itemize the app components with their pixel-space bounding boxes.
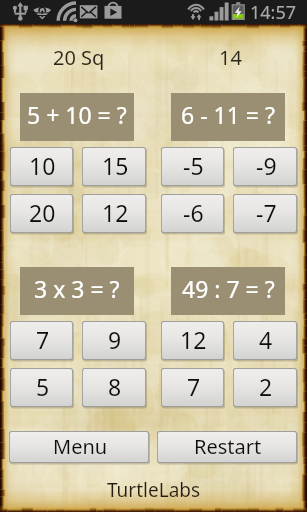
button[interactable]: 6 - 11 = ? — [171, 93, 285, 141]
staticText: 9 — [108, 324, 122, 355]
button[interactable]: 12 — [82, 194, 146, 233]
button[interactable]: 7 — [161, 368, 224, 407]
staticText: 2 — [259, 371, 273, 402]
staticText: 10 — [29, 150, 56, 181]
button[interactable]: 10 — [10, 147, 73, 186]
staticText: 14:57 — [250, 0, 297, 24]
button[interactable]: Restart — [157, 431, 297, 463]
staticText: -9 — [256, 150, 277, 181]
button[interactable]: 3 x 3 = ? — [20, 267, 134, 315]
staticText: 20 — [29, 197, 56, 228]
button[interactable]: 4 — [233, 321, 297, 360]
staticText: 49 : 7 = ? — [182, 273, 275, 304]
button[interactable]: 12 — [161, 321, 224, 360]
button[interactable]: 49 : 7 = ? — [171, 267, 285, 315]
button[interactable]: 8 — [82, 368, 146, 407]
button[interactable]: -6 — [161, 194, 224, 233]
button[interactable]: Menu — [9, 431, 149, 463]
button[interactable]: 20 — [10, 194, 73, 233]
button[interactable]: 5 + 10 = ? — [20, 93, 134, 141]
staticText: 7 — [187, 371, 201, 402]
button[interactable]: -7 — [233, 194, 297, 233]
staticText: 12 — [180, 324, 207, 355]
button[interactable]: 15 — [82, 147, 146, 186]
staticText: TurtleLabs — [107, 477, 201, 503]
button[interactable]: -5 — [161, 147, 224, 186]
staticText: 12 — [102, 197, 129, 228]
staticText: 5 — [36, 371, 50, 402]
button[interactable]: -9 — [233, 147, 297, 186]
staticText: 7 — [36, 324, 50, 355]
button[interactable]: 7 — [10, 321, 73, 360]
button[interactable]: 9 — [82, 321, 146, 360]
staticText: 20 Sq — [53, 44, 105, 70]
staticText: 3 x 3 = ? — [34, 273, 120, 304]
staticText: 8 — [108, 371, 122, 402]
button[interactable]: 2 — [233, 368, 297, 407]
button[interactable]: 5 — [10, 368, 73, 407]
staticText: -5 — [183, 150, 204, 181]
staticText: -7 — [256, 197, 277, 228]
staticText: 6 - 11 = ? — [181, 99, 275, 130]
staticText: -6 — [183, 197, 204, 228]
staticText: 14 — [219, 44, 242, 70]
staticText: Menu — [53, 433, 108, 460]
staticText: 5 + 10 = ? — [27, 99, 127, 130]
staticText: Restart — [194, 433, 262, 460]
staticText: 15 — [102, 150, 129, 181]
staticText: 4 — [259, 324, 273, 355]
